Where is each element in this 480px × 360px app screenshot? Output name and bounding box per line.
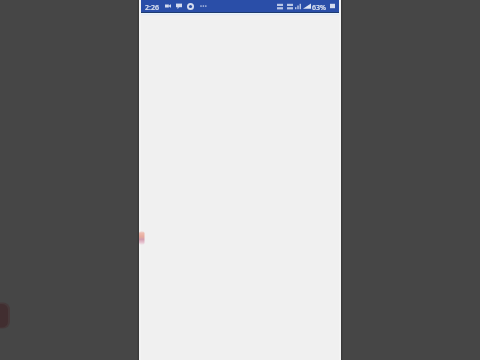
other: More notifications xyxy=(200,3,206,9)
other: Wi-Fi signal xyxy=(303,3,311,10)
other: Battery 63 percent xyxy=(330,3,335,9)
other: Network type xyxy=(287,3,293,10)
button[interactable]: Status bar xyxy=(139,0,341,12)
other: Message notification xyxy=(176,3,182,9)
other: Video call notification xyxy=(165,3,171,9)
staticText: 63% xyxy=(312,3,326,13)
other: App notification xyxy=(187,3,194,10)
other: Mobile data xyxy=(277,3,283,10)
other: Signal strength xyxy=(295,3,302,10)
staticText: 2:26 xyxy=(145,3,159,13)
